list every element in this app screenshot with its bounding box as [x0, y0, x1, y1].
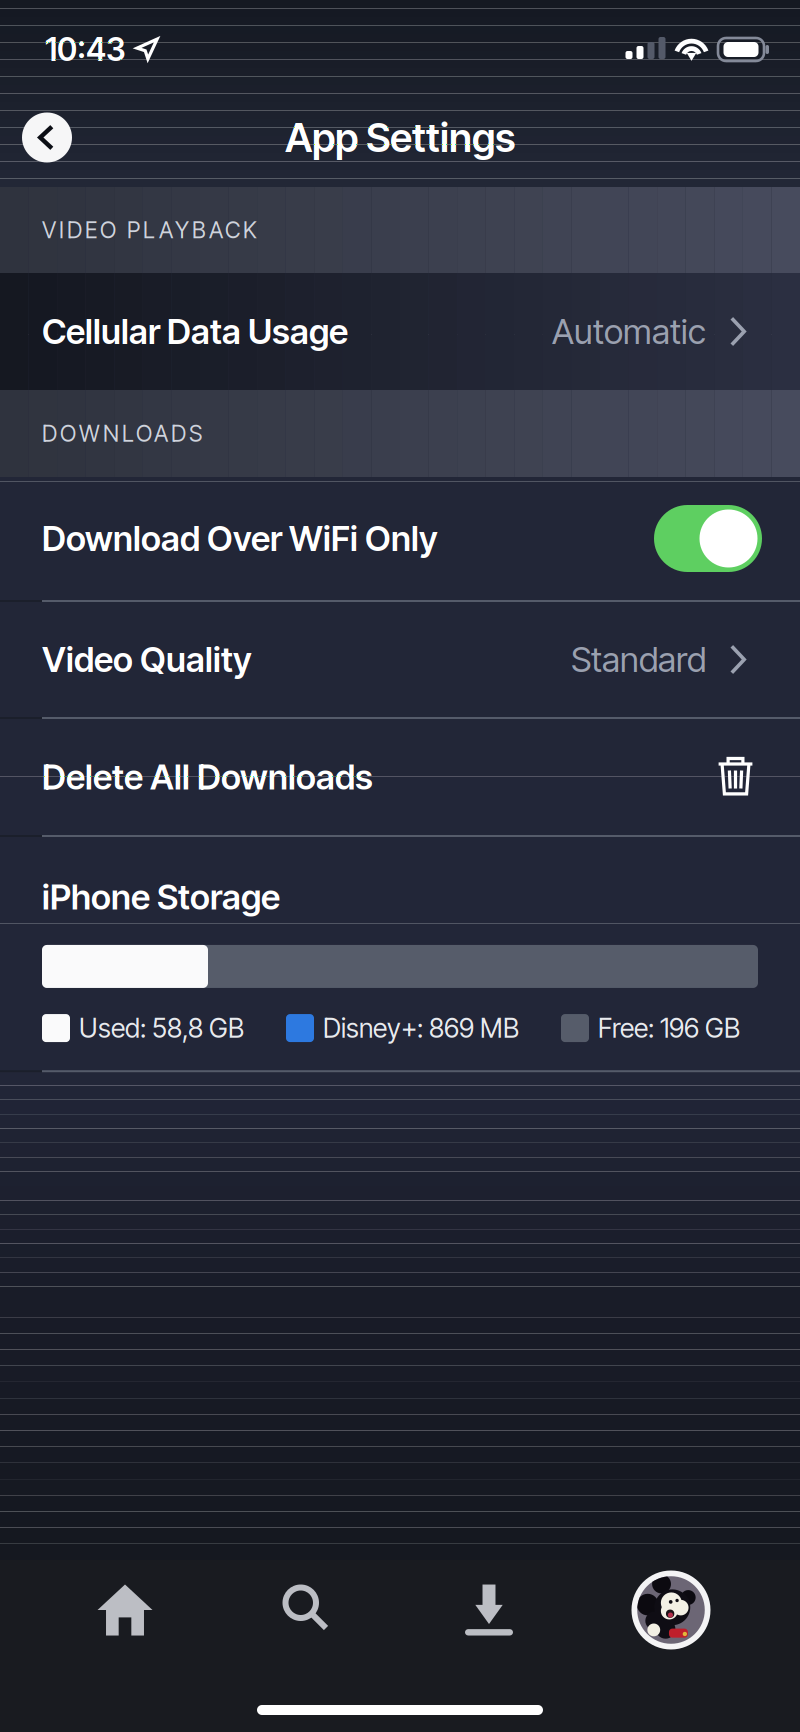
staticText: Delete All Downloads: [42, 756, 373, 798]
button[interactable]: Back: [22, 112, 72, 162]
button[interactable]: Downloads: [398, 1560, 580, 1660]
staticText: Download Over WiFi Only: [42, 517, 438, 559]
staticText: Disney+: 869 MB: [323, 1012, 519, 1044]
staticText: VIDEO PLAYBACK: [42, 216, 257, 244]
staticText: Used: 58,8 GB: [79, 1012, 244, 1044]
button[interactable]: Video Quality: [0, 602, 800, 717]
button[interactable]: Home: [34, 1560, 216, 1660]
staticText: 10:43: [45, 30, 126, 69]
staticText: Standard: [571, 638, 706, 680]
staticText: iPhone Storage: [42, 876, 280, 918]
staticText: Video Quality: [42, 638, 252, 680]
staticText: App Settings: [285, 113, 515, 162]
staticText: Automatic: [552, 310, 706, 352]
staticText: Free: 196 GB: [598, 1012, 740, 1044]
button[interactable]: Cellular Data Usage: [0, 273, 800, 390]
staticText: Cellular Data Usage: [42, 310, 348, 352]
staticText: DOWNLOADS: [42, 420, 202, 447]
button[interactable]: Profile: [580, 1560, 762, 1660]
button[interactable]: Search: [216, 1560, 398, 1660]
button[interactable]: Delete All Downloads: [0, 719, 800, 835]
button[interactable]: Download Over WiFi Only: [0, 477, 800, 600]
